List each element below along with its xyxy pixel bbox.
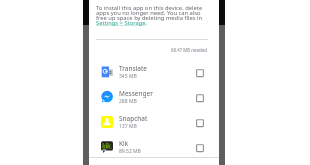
staticText: 345 MB [119, 73, 137, 80]
staticText: Messenger [119, 89, 153, 98]
staticText: 137 MB [119, 123, 137, 130]
button[interactable]: Select Translate [195, 67, 204, 76]
button[interactable]: Kik [89, 134, 219, 159]
staticText: To install this app on this device, dele… [96, 4, 212, 27]
staticText: Translate [119, 64, 147, 73]
staticText: 89.52 MB [119, 148, 141, 155]
button[interactable]: Messenger [89, 84, 219, 109]
staticText: Snapchat [119, 114, 148, 123]
button[interactable]: Select Snapchat [195, 117, 204, 126]
button[interactable]: Snapchat [89, 109, 219, 134]
button[interactable]: Select Messenger [195, 92, 204, 101]
staticText: 68.47 MB needed [171, 47, 207, 53]
staticText: 288 MB [119, 98, 137, 105]
button[interactable]: Translate [89, 59, 219, 84]
button[interactable]: Select Kik [195, 142, 204, 151]
button[interactable]: To install this app on this device, dele… [96, 4, 212, 27]
staticText: Kik [119, 139, 129, 148]
